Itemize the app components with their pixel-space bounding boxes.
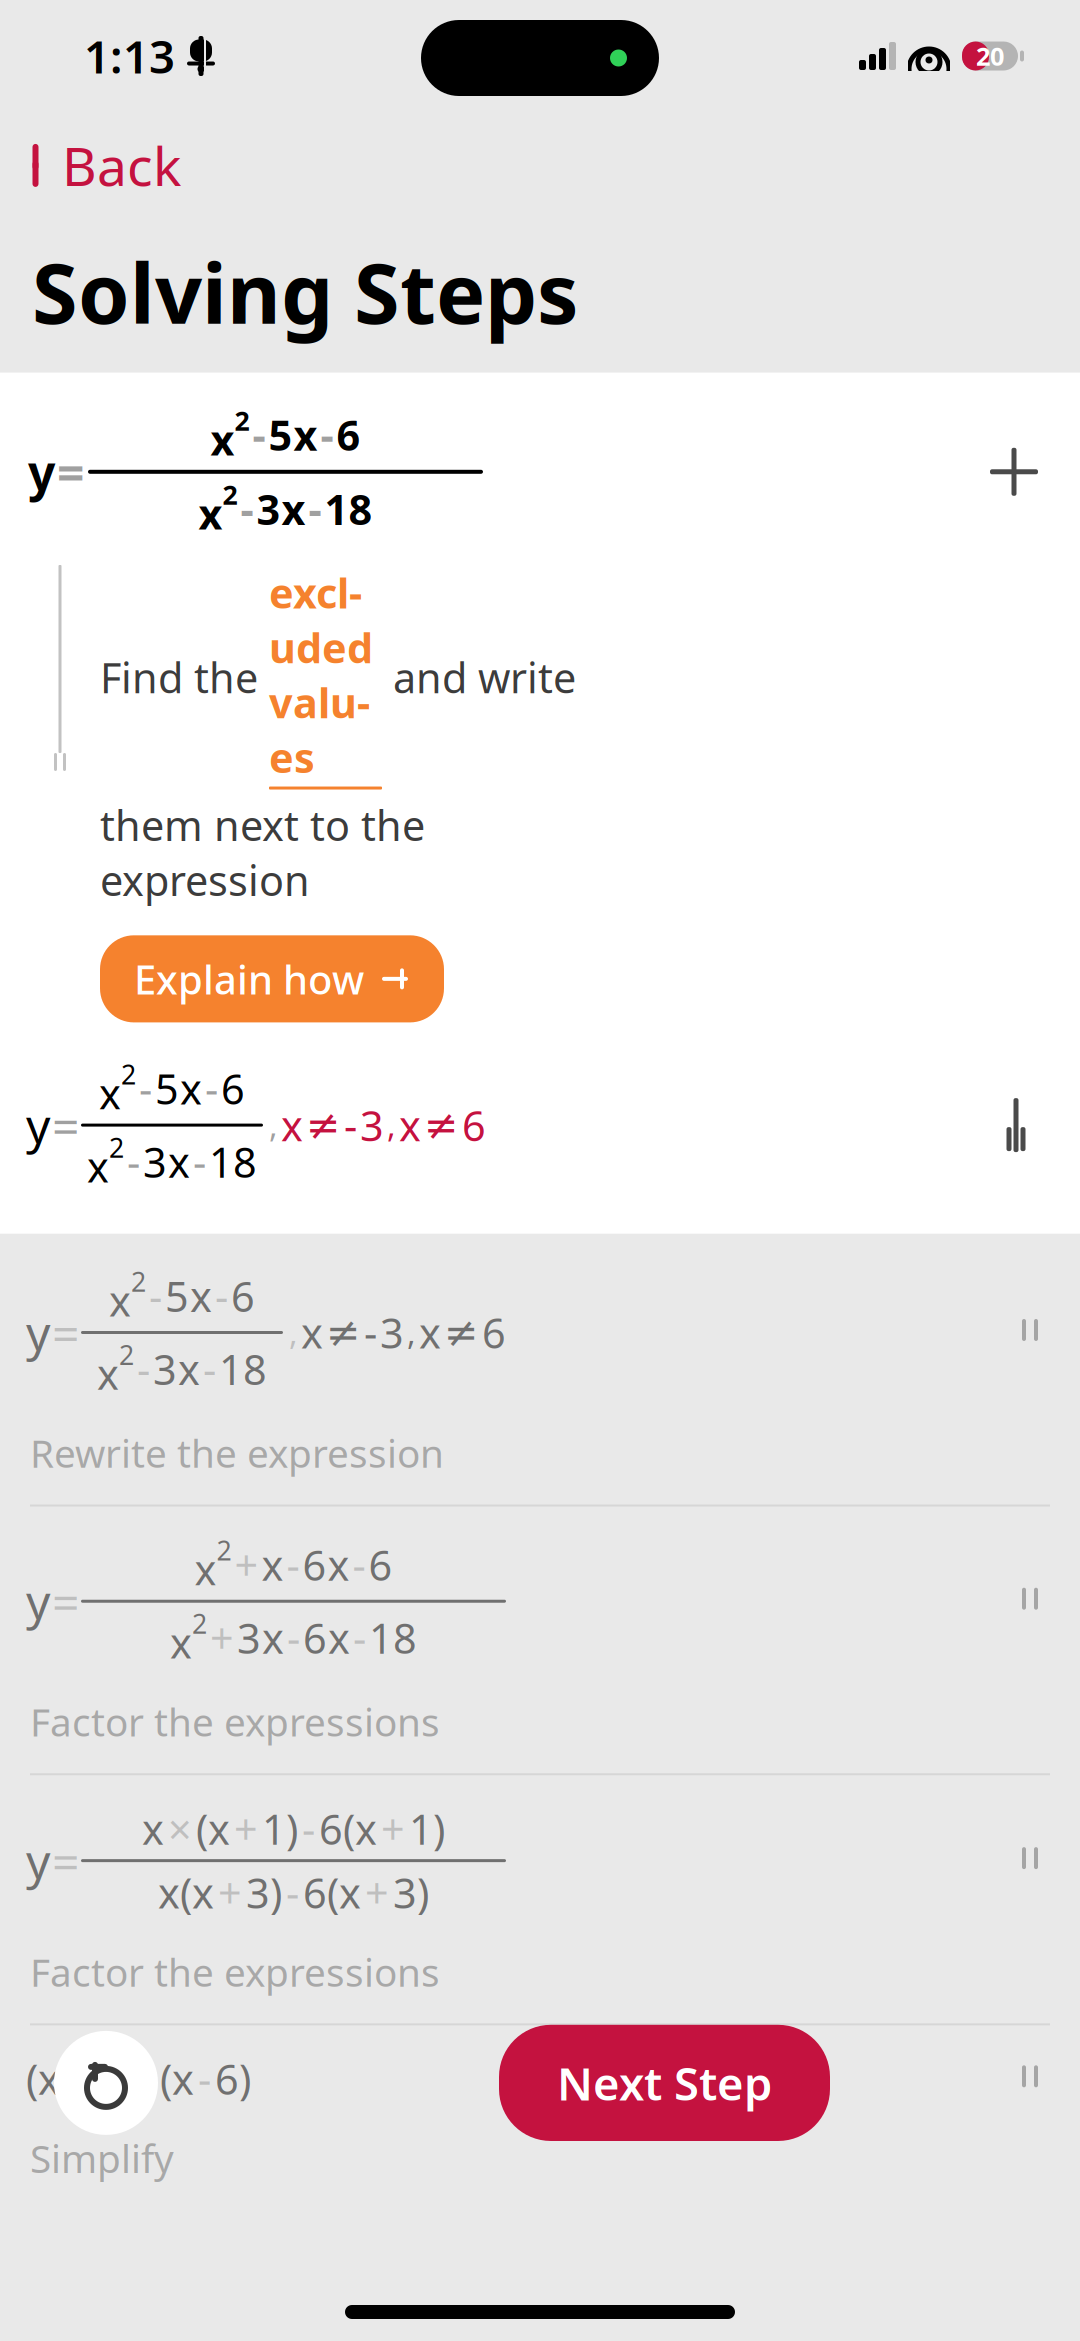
staticText: 5	[268, 407, 292, 462]
staticText: (x	[196, 1801, 230, 1856]
staticText: x	[281, 1098, 303, 1153]
staticText: x	[327, 1537, 349, 1592]
staticText: y	[26, 1829, 50, 1892]
staticText: 2	[119, 1337, 134, 1372]
staticText: =	[52, 1569, 79, 1633]
button[interactable]: excluded values	[269, 565, 382, 790]
staticText: x	[180, 1061, 202, 1116]
staticText: +	[365, 1865, 389, 1920]
staticText: -	[287, 1610, 300, 1665]
staticText: -	[139, 1061, 152, 1116]
staticText: -	[286, 1865, 299, 1920]
staticText: 2	[131, 1264, 146, 1299]
staticText: 3	[360, 1098, 384, 1153]
staticText: 2	[234, 403, 249, 438]
staticText: ×	[168, 1801, 192, 1856]
staticText: =	[52, 1829, 79, 1892]
staticText: =	[52, 1301, 79, 1364]
button[interactable]: Next step	[972, 1080, 1060, 1170]
staticText: 3	[380, 1305, 404, 1360]
staticText: -	[352, 1537, 365, 1592]
staticText: -	[344, 1098, 357, 1153]
button[interactable]: Back	[22, 122, 185, 209]
staticText: +	[234, 1801, 258, 1856]
staticText: +	[64, 2051, 88, 2106]
staticText: ,	[387, 1104, 396, 1146]
staticText: 1)	[409, 1801, 445, 1856]
staticText: -	[240, 481, 253, 536]
staticText: x	[178, 1342, 200, 1396]
staticText: 2	[222, 477, 237, 512]
staticText: +	[218, 1865, 242, 1920]
staticText: Explain how	[134, 952, 364, 1005]
staticText: Factor the expressions	[30, 1946, 440, 1997]
staticText: -	[127, 1134, 140, 1189]
staticText: ≠	[444, 1309, 479, 1356]
staticText: x	[301, 1305, 323, 1360]
staticText: 6(x	[303, 1865, 361, 1920]
staticText: x	[87, 1139, 109, 1194]
staticText: 1)	[262, 1801, 298, 1856]
staticText: 18	[219, 1342, 267, 1396]
staticText: 18	[324, 481, 372, 536]
staticText: -	[308, 481, 321, 536]
staticText: Back	[62, 130, 181, 201]
staticText: x	[168, 1134, 190, 1189]
staticText: Solving Steps	[32, 237, 578, 347]
staticText: excluded values	[269, 565, 373, 785]
staticText: ,	[289, 1311, 298, 1354]
staticText: -	[302, 1801, 315, 1856]
staticText: -	[137, 1342, 150, 1396]
button[interactable]: (x	[0, 2023, 1080, 2210]
staticText: 1)	[92, 2051, 128, 2106]
staticText: -	[203, 1342, 216, 1396]
button[interactable]: Next Step	[499, 2025, 830, 2141]
button[interactable]: Undo	[54, 2031, 158, 2135]
staticText: and write	[382, 650, 576, 705]
staticText: ,	[407, 1311, 416, 1354]
staticText: x	[328, 1610, 350, 1665]
staticText: -	[215, 1268, 228, 1323]
staticText: -	[286, 1537, 299, 1592]
staticText: x	[281, 481, 305, 536]
staticText: 5	[165, 1268, 189, 1323]
staticText: x	[293, 407, 317, 462]
staticText: (x	[160, 2051, 194, 2106]
staticText: x	[419, 1305, 441, 1360]
staticText: +	[234, 1537, 258, 1592]
staticText: x	[99, 1066, 121, 1121]
staticText: -	[320, 407, 333, 462]
staticText: (x	[26, 2051, 60, 2106]
staticText: 2	[121, 1056, 136, 1092]
staticText: ≠	[326, 1309, 361, 1356]
staticText: 2	[192, 1606, 207, 1641]
staticText: x	[399, 1098, 421, 1153]
staticText: -	[252, 407, 265, 462]
staticText: =	[57, 440, 84, 504]
staticText: -	[149, 1268, 162, 1323]
staticText: x	[170, 1615, 192, 1670]
staticText: x	[262, 1610, 284, 1665]
staticText: x	[190, 1268, 212, 1323]
staticText: Rewrite the expression	[30, 1427, 444, 1478]
staticText: +	[210, 1610, 234, 1665]
staticText: Factor the expressions	[30, 1696, 440, 1747]
staticText: 6	[368, 1537, 392, 1592]
button[interactable]: y	[0, 1504, 1080, 1773]
staticText: 6	[462, 1098, 486, 1153]
staticText: ≠	[306, 1102, 341, 1149]
staticText: ,	[269, 1104, 278, 1146]
button[interactable]: Close	[966, 428, 1062, 516]
staticText: 3	[153, 1342, 177, 1396]
staticText: =	[52, 1093, 79, 1157]
button[interactable]: y	[0, 1773, 1080, 2023]
staticText: 6)	[215, 2051, 251, 2106]
button[interactable]: y	[0, 1264, 1080, 1504]
staticText: x	[142, 1801, 164, 1856]
staticText: Find the	[100, 650, 269, 705]
staticText: x	[97, 1346, 119, 1401]
button[interactable]: Explain how	[100, 935, 444, 1022]
staticText: y	[26, 1093, 50, 1157]
staticText: 3	[143, 1134, 167, 1189]
staticText: x	[109, 1273, 131, 1328]
